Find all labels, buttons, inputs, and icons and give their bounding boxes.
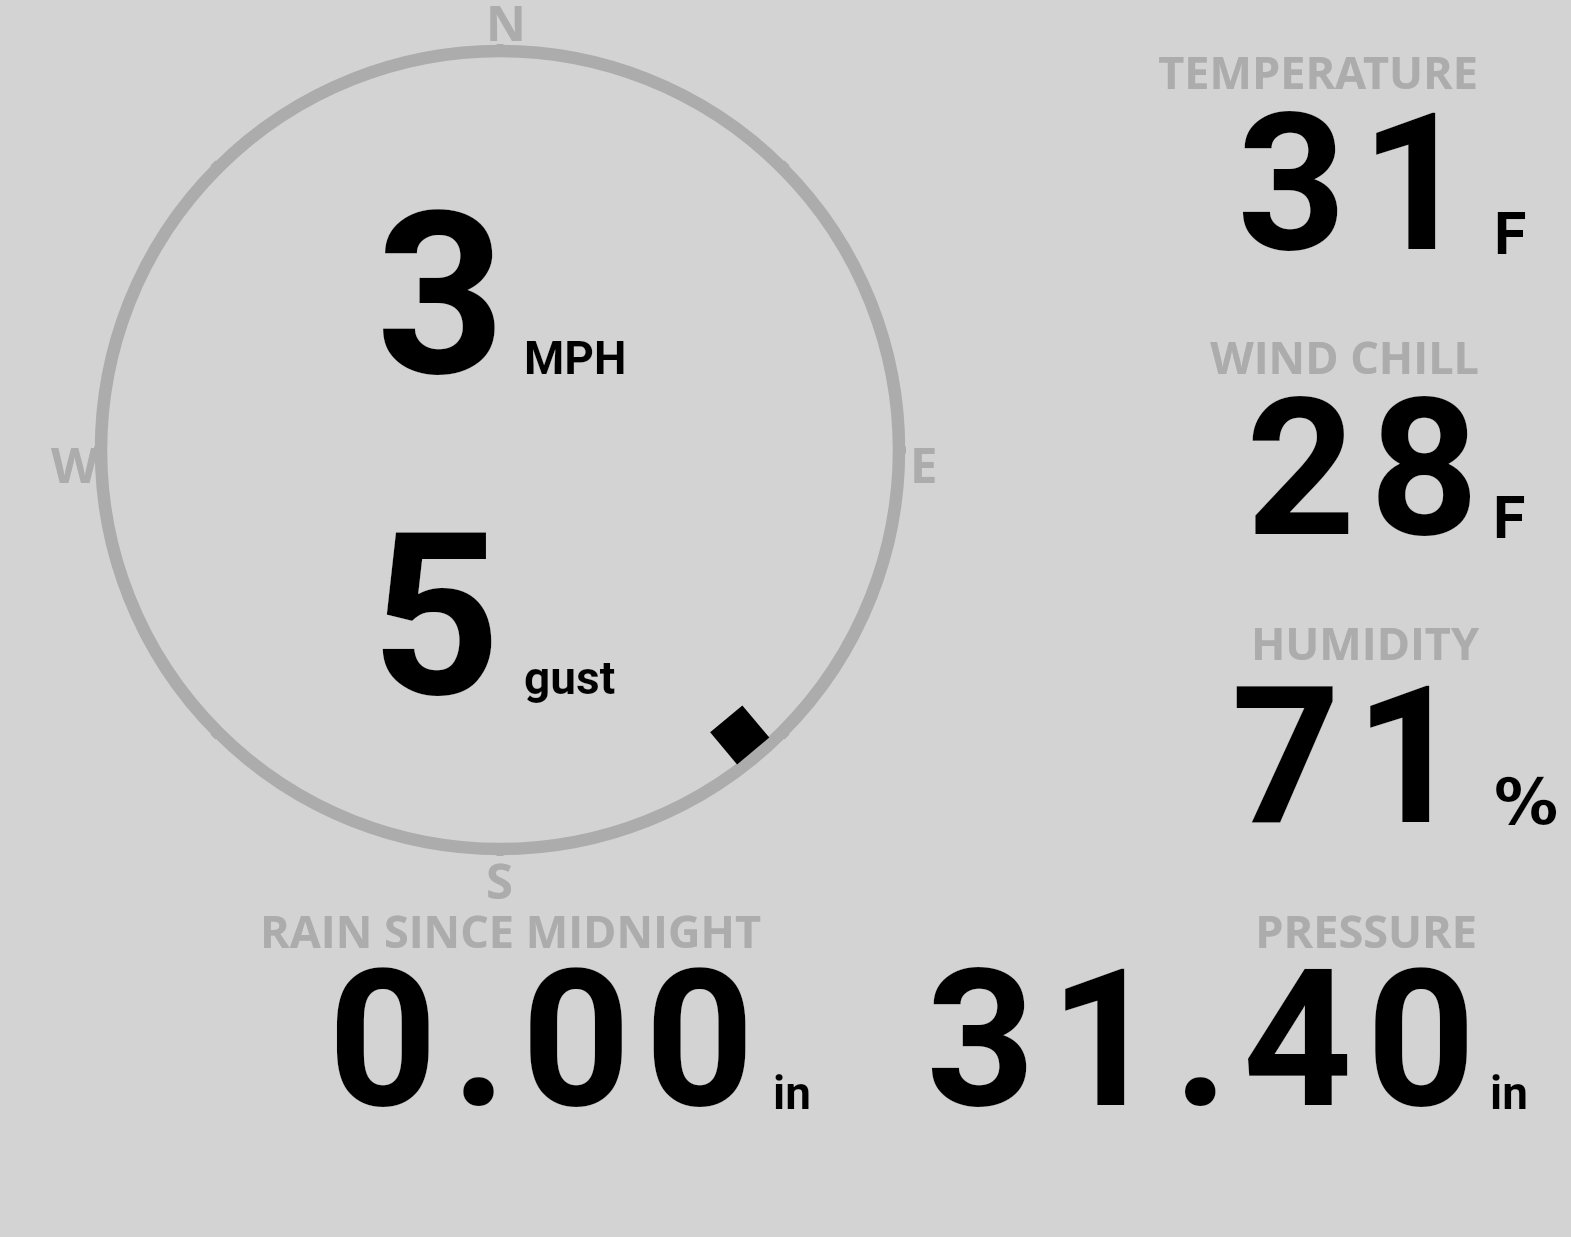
button[interactable]: TEMPERATURE [1140,40,1571,285]
staticText: S [486,847,513,914]
staticText: 28 [1246,357,1494,581]
staticText: 31 [1237,72,1485,296]
staticText: in [1490,1066,1528,1120]
button[interactable]: Wind speed and direction dial [30,0,970,910]
staticText: PRESSURE [917,900,1477,970]
staticText: % [1494,765,1559,840]
staticText: 31.40 [926,928,1490,1152]
staticText: 3 [376,163,520,428]
staticText: W [51,431,99,498]
staticText: N [486,0,526,56]
staticText: F [1493,483,1526,552]
staticText: in [773,1066,811,1120]
staticText: F [1494,199,1527,268]
staticText: E [910,431,938,498]
button[interactable]: HUMIDITY [1140,610,1571,855]
staticText: gust [524,651,616,705]
button[interactable]: PRESSURE [900,900,1540,1130]
staticText: RAIN SINCE MIDNIGHT [260,900,761,961]
button[interactable]: RAIN SINCE MIDNIGHT [220,900,840,1130]
staticText: MPH [524,331,627,385]
staticText: TEMPERATURE [1078,41,1478,111]
staticText: 5 [371,484,515,749]
button[interactable]: WIND CHILL [1140,325,1571,570]
staticText: WIND CHILL [1079,326,1479,396]
staticText: 0.00 [328,928,769,1152]
staticText: HUMIDITY [1079,612,1479,682]
staticText: 71 [1231,645,1479,869]
